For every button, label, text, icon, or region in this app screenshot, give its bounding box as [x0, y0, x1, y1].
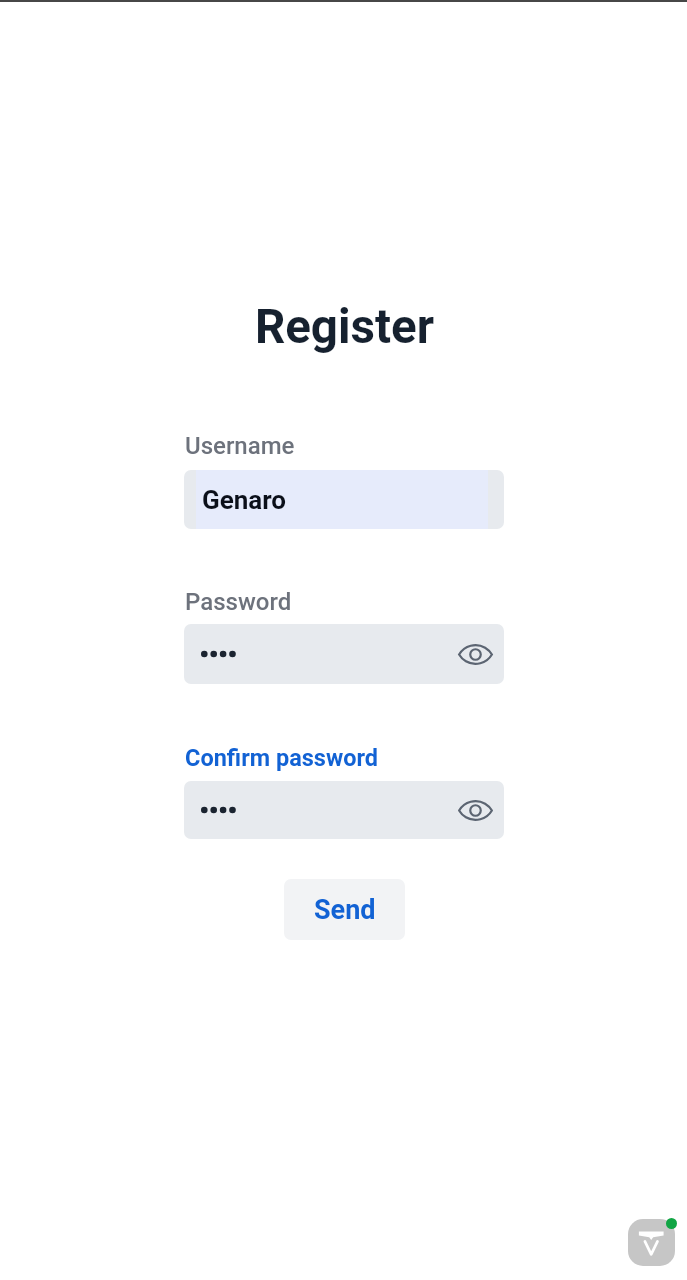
staticText: Register	[1, 299, 687, 355]
button[interactable]: Assistant	[628, 1219, 675, 1266]
button[interactable]: Send	[284, 879, 405, 940]
button[interactable]: Show password	[184, 624, 504, 684]
button[interactable]: Genaro	[184, 470, 504, 529]
staticText: Username	[185, 432, 295, 460]
staticText: Confirm password	[185, 744, 379, 772]
staticText: Genaro	[202, 485, 287, 515]
button[interactable]: Show password	[453, 632, 497, 676]
button[interactable]: Show password	[184, 781, 504, 839]
button[interactable]: Show password	[453, 788, 497, 832]
staticText: Password	[185, 588, 292, 616]
staticText: Send	[314, 894, 376, 926]
